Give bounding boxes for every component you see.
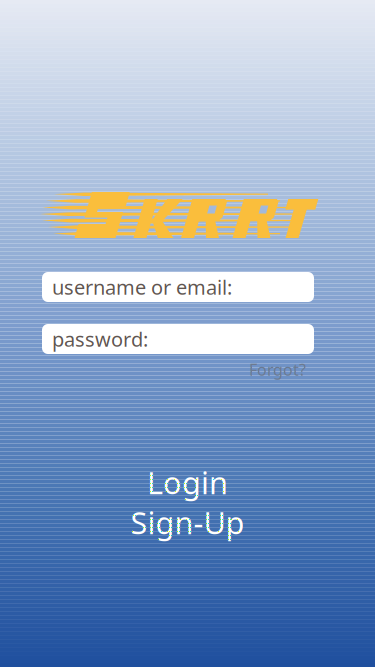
staticText: Sign-Up xyxy=(130,502,244,543)
button[interactable]: Sign-Up xyxy=(87,508,287,536)
staticText: Login xyxy=(147,462,228,503)
staticText: password: xyxy=(52,326,148,352)
staticText: Forgot? xyxy=(249,359,306,380)
button[interactable]: Login xyxy=(87,468,287,496)
button[interactable]: Forgot? xyxy=(249,359,306,380)
staticText: username or email: xyxy=(52,274,232,300)
